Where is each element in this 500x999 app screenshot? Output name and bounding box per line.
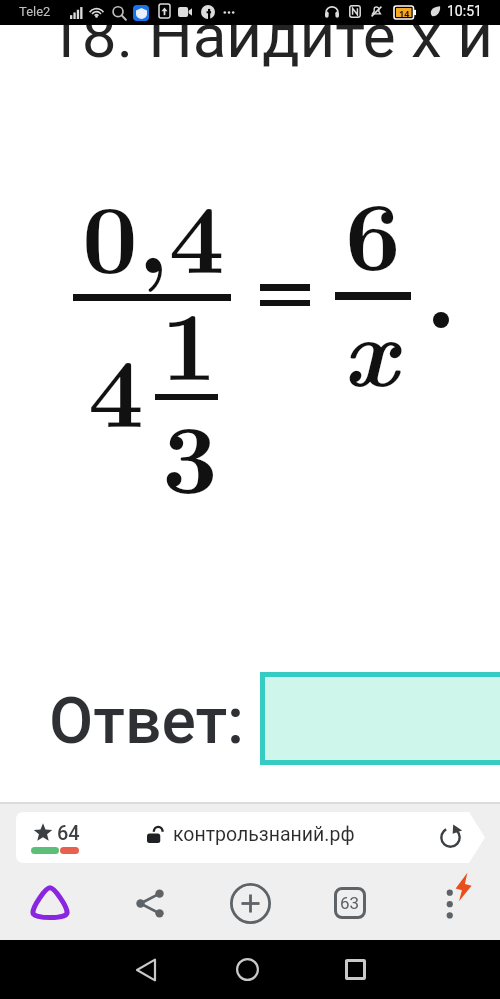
staticText: 3	[162, 383, 218, 522]
staticText: 1	[161, 270, 217, 409]
staticText: 4	[88, 317, 144, 456]
button[interactable]: New tab	[200, 871, 300, 935]
button[interactable]: Back	[116, 940, 176, 999]
staticText: 10:51	[447, 3, 482, 19]
button[interactable]: 64	[16, 812, 485, 863]
staticText: 18. Найдите x и	[47, 0, 493, 72]
staticText: 63	[340, 893, 360, 913]
button[interactable]: Home	[217, 940, 277, 999]
button[interactable]: Recent apps	[325, 940, 385, 999]
staticText: x	[343, 275, 398, 416]
staticText: Tele2	[19, 4, 51, 19]
button[interactable]: More options	[409, 867, 500, 931]
staticText: 64	[57, 821, 80, 844]
staticText: 0,4	[82, 163, 225, 302]
button[interactable]: Reload page	[420, 812, 481, 863]
staticText: контрользнаний.рф	[173, 823, 355, 846]
staticText: Ответ:	[49, 684, 245, 759]
staticText: 14	[399, 7, 410, 19]
button[interactable]: Share	[100, 871, 200, 935]
button[interactable]: Brave Shields	[0, 871, 100, 935]
staticText: 6	[345, 160, 401, 299]
button[interactable]: Tabs, 63 open	[300, 871, 400, 935]
